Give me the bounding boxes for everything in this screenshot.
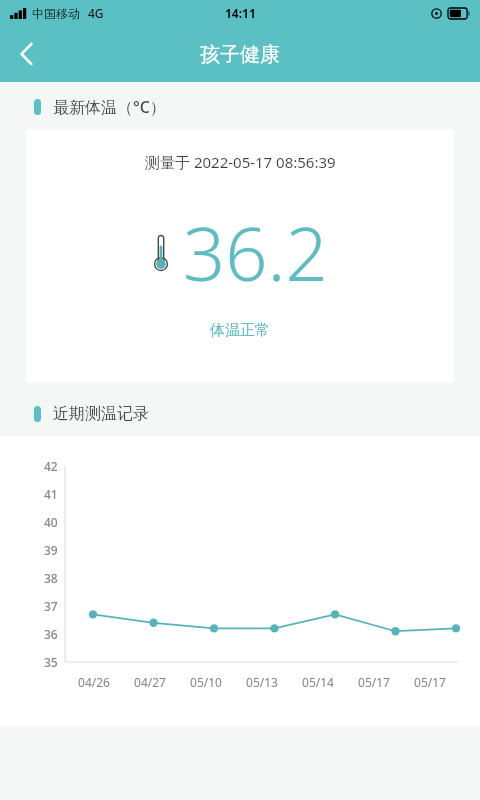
staticText: 40 bbox=[44, 514, 58, 530]
staticText: 04/26 bbox=[78, 674, 110, 690]
button[interactable]: 测量于 2022-05-17 08:56:39 bbox=[26, 130, 454, 382]
staticText: 体温正常 bbox=[210, 321, 270, 340]
staticText: 14:11 bbox=[225, 5, 256, 21]
staticText: 36.2 bbox=[183, 202, 328, 303]
button[interactable]: Back bbox=[0, 28, 52, 80]
staticText: 05/10 bbox=[190, 674, 222, 690]
staticText: 05/14 bbox=[302, 674, 334, 690]
staticText: 4G bbox=[88, 5, 104, 21]
staticText: 04/27 bbox=[134, 674, 166, 690]
staticText: 05/13 bbox=[246, 674, 278, 690]
staticText: 05/17 bbox=[414, 674, 446, 690]
staticText: 37 bbox=[44, 598, 58, 614]
staticText: 35 bbox=[44, 654, 58, 670]
staticText: 38 bbox=[44, 570, 58, 586]
staticText: 测量于 2022-05-17 08:56:39 bbox=[145, 152, 336, 172]
staticText: 42 bbox=[44, 458, 58, 474]
staticText: 最新体温（°C） bbox=[53, 96, 166, 118]
staticText: 中国移动 bbox=[32, 6, 80, 21]
staticText: 41 bbox=[44, 486, 58, 502]
staticText: 孩子健康 bbox=[200, 42, 280, 67]
staticText: 36 bbox=[44, 626, 58, 642]
staticText: 05/17 bbox=[358, 674, 390, 690]
staticText: 近期测温记录 bbox=[53, 404, 149, 424]
staticText: 39 bbox=[44, 542, 58, 558]
